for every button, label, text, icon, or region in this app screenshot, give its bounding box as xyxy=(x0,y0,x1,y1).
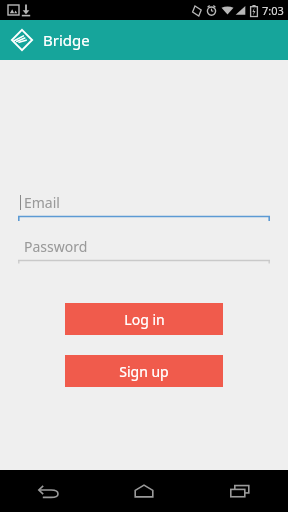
other: Bridge logo xyxy=(11,29,33,51)
button[interactable]: Home xyxy=(96,470,192,512)
staticText: Log in xyxy=(124,310,165,329)
staticText: Email xyxy=(24,193,60,212)
staticText: 7:03 xyxy=(262,3,284,18)
staticText: Bridge xyxy=(43,30,90,50)
staticText: Password xyxy=(24,237,88,256)
button[interactable]: Password xyxy=(18,233,270,265)
button[interactable]: Recent apps xyxy=(192,470,288,512)
staticText: Sign up xyxy=(119,362,169,381)
button[interactable]: Log in xyxy=(65,303,223,335)
button[interactable]: Sign up xyxy=(65,355,223,387)
button[interactable]: Back xyxy=(0,470,96,512)
button[interactable]: Email xyxy=(18,189,270,221)
